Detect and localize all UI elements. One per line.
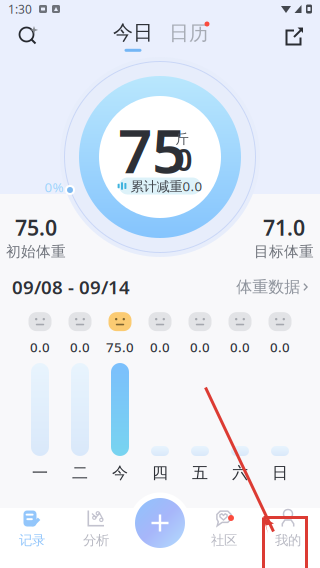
button[interactable]: AI Search [8, 18, 48, 54]
staticText: 75.0 [106, 338, 134, 356]
button[interactable]: 记录 [0, 508, 64, 568]
staticText: 四 [152, 463, 168, 483]
staticText: 0.0 [230, 338, 250, 356]
staticText: 一 [32, 463, 48, 483]
staticText: 我的 [275, 532, 301, 548]
staticText: 五 [192, 463, 208, 483]
button[interactable]: 我的 [256, 508, 320, 568]
button[interactable]: Share [275, 18, 315, 54]
staticText: 记录 [19, 532, 45, 548]
staticText: 0.0 [70, 338, 90, 356]
staticText: 体重数据 [236, 277, 300, 297]
staticText: 初始体重 [6, 243, 66, 261]
staticText: 09/08 - 09/14 [12, 275, 130, 299]
staticText: 今日 [113, 20, 153, 45]
staticText: 分析 [83, 532, 109, 548]
staticText: 1:30 [8, 1, 32, 17]
staticText: 0.0 [190, 338, 210, 356]
staticText: 75.0 [15, 213, 57, 242]
staticText: 累计减重0.0 [130, 177, 202, 195]
button[interactable]: 日历 [165, 16, 213, 50]
staticText: 六 [232, 463, 248, 483]
staticText: 斤 [175, 131, 188, 147]
button[interactable]: 今日 [109, 19, 157, 53]
staticText: 今 [112, 463, 128, 483]
button[interactable]: Add record [135, 498, 185, 548]
staticText: .0 [167, 139, 193, 179]
staticText: 社区 [211, 532, 237, 548]
staticText: 二 [72, 463, 88, 483]
button[interactable]: 体重数据 [230, 271, 314, 303]
staticText: 71.0 [263, 213, 305, 242]
staticText: 75 [118, 110, 186, 190]
staticText: 0.0 [270, 338, 290, 356]
staticText: 日 [272, 463, 288, 483]
staticText: 0% [44, 178, 63, 196]
staticText: 目标体重 [254, 243, 314, 261]
button[interactable]: 社区 [192, 508, 256, 568]
staticText: 0.0 [30, 338, 50, 356]
button[interactable]: 分析 [64, 508, 128, 568]
staticText: 0.0 [150, 338, 170, 356]
staticText: 日历 [169, 21, 209, 45]
